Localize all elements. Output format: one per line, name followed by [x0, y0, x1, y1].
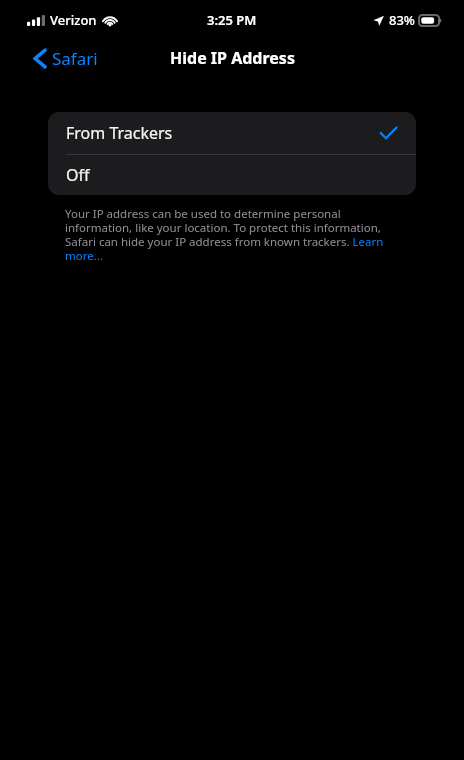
- button[interactable]: From Trackers: [48, 112, 416, 154]
- button[interactable]: Your IP address can be used to determine…: [65, 206, 398, 263]
- other: Back: [34, 49, 46, 68]
- staticText: Hide IP Address: [170, 47, 295, 69]
- staticText: Your IP address can be used to determine…: [65, 206, 398, 263]
- staticText: 83%: [389, 11, 415, 29]
- button[interactable]: Back: [0, 43, 108, 74]
- staticText: From Trackers: [66, 122, 173, 144]
- staticText: Safari: [52, 47, 98, 70]
- staticText: Off: [66, 164, 90, 186]
- button[interactable]: Off: [48, 155, 416, 195]
- staticText: Verizon: [50, 11, 97, 29]
- staticText: 3:25 PM: [207, 11, 257, 29]
